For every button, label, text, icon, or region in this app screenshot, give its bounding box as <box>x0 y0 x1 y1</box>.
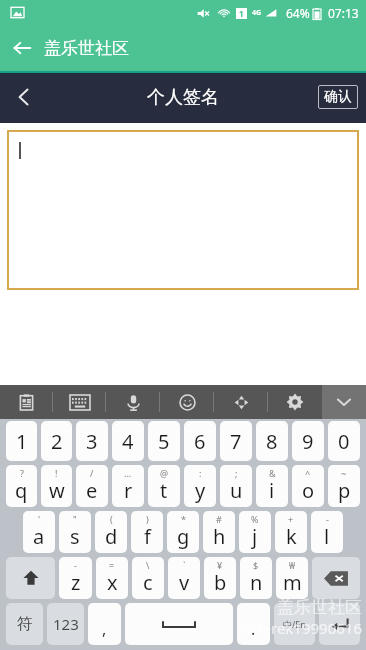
button[interactable]: 4 <box>112 421 144 461</box>
button[interactable]: ~ <box>328 465 360 507</box>
button[interactable]: ¥ <box>204 557 236 599</box>
button[interactable]: / <box>76 465 108 507</box>
button[interactable]: 确认 <box>318 85 358 109</box>
button[interactable]: Voice input <box>106 385 160 419</box>
staticText: 7 <box>230 428 242 455</box>
staticText: ` <box>183 559 186 571</box>
button[interactable]: Symbols <box>6 603 43 645</box>
button[interactable]: - <box>59 557 92 599</box>
button[interactable]: Back <box>0 73 48 121</box>
staticText: z <box>71 569 81 596</box>
button[interactable]: 6 <box>184 421 216 461</box>
staticText: h <box>213 523 226 550</box>
button[interactable]: Language <box>274 603 315 645</box>
button[interactable] <box>125 603 233 645</box>
button[interactable]: ) <box>131 511 163 553</box>
staticText: = <box>109 559 115 571</box>
staticText: , <box>102 618 107 640</box>
button[interactable]: . <box>237 603 270 645</box>
staticText: g <box>177 523 190 550</box>
button[interactable]: ₩ <box>276 557 308 599</box>
button[interactable]: ' <box>23 511 55 553</box>
button[interactable]: Enter <box>319 603 360 645</box>
staticText: c <box>143 569 153 596</box>
staticText: 3 <box>86 428 98 455</box>
button[interactable]: 7 <box>220 421 252 461</box>
staticText: - <box>326 513 329 525</box>
staticText: ^ <box>305 467 311 479</box>
button[interactable]: ^ <box>292 465 324 507</box>
staticText: j <box>252 523 258 550</box>
button[interactable]: ` <box>168 557 200 599</box>
button[interactable]: 1 <box>6 421 37 461</box>
button[interactable]: Emoji <box>160 385 214 419</box>
staticText: - <box>74 559 77 571</box>
button[interactable]: ! <box>41 465 72 507</box>
button[interactable]: - <box>311 511 343 553</box>
staticText: 07:13 <box>328 5 359 21</box>
button[interactable]: = <box>96 557 128 599</box>
staticText: / <box>90 467 94 479</box>
staticText: 盖乐世社区 <box>277 597 362 618</box>
button[interactable]: \ <box>132 557 164 599</box>
button[interactable]: Numbers <box>47 603 84 645</box>
button[interactable]: % <box>239 511 271 553</box>
button[interactable]: & <box>256 465 288 507</box>
staticText: 确认 <box>324 88 352 106</box>
button[interactable]: Back <box>0 26 44 70</box>
button[interactable]: 0 <box>328 421 360 461</box>
button[interactable]: 9 <box>292 421 324 461</box>
button[interactable] <box>7 130 359 290</box>
button[interactable]: , <box>88 603 121 645</box>
staticText: x <box>107 569 118 596</box>
button[interactable]: * <box>167 511 199 553</box>
staticText: ) <box>146 513 149 525</box>
button[interactable]: + <box>275 511 307 553</box>
staticText: @derek19990616 <box>239 618 362 638</box>
staticText: % <box>251 513 259 525</box>
staticText: ₩ <box>289 559 296 571</box>
button[interactable]: 3 <box>76 421 108 461</box>
button[interactable]: " <box>59 511 91 553</box>
staticText: l <box>324 523 330 550</box>
staticText: q <box>15 477 28 504</box>
staticText: 4 <box>122 428 134 455</box>
button[interactable]: Shift <box>6 557 55 599</box>
button[interactable]: @ <box>148 465 180 507</box>
button[interactable]: : <box>184 465 216 507</box>
staticText: f <box>144 523 151 550</box>
button[interactable]: Backspace <box>312 557 360 599</box>
button[interactable]: ? <box>6 465 37 507</box>
button[interactable]: $ <box>240 557 272 599</box>
staticText: $ <box>253 559 259 571</box>
button[interactable]: Keyboard layout <box>53 385 106 419</box>
button[interactable]: Hide keyboard <box>322 385 366 419</box>
staticText: t <box>160 477 168 504</box>
staticText: 符 <box>17 614 33 634</box>
staticText: + <box>288 513 294 525</box>
button[interactable]: Clipboard <box>0 385 53 419</box>
staticText: . <box>251 618 256 640</box>
staticText: a <box>33 523 45 550</box>
staticText: 0 <box>338 428 350 455</box>
staticText: y <box>195 477 206 504</box>
staticText: d <box>105 523 118 550</box>
button[interactable]: 5 <box>148 421 180 461</box>
button[interactable]: 8 <box>256 421 288 461</box>
staticText: ¥ <box>217 559 223 571</box>
button[interactable]: Move cursor <box>214 385 268 419</box>
staticText: * <box>181 513 186 525</box>
button[interactable]: ... <box>112 465 144 507</box>
staticText: 中/En <box>283 618 306 630</box>
button[interactable]: ; <box>220 465 252 507</box>
staticText: o <box>302 477 315 504</box>
staticText: 123 <box>53 614 79 634</box>
staticText: n <box>250 569 263 596</box>
staticText: k <box>286 523 297 550</box>
button[interactable]: 2 <box>41 421 72 461</box>
button[interactable]: # <box>203 511 235 553</box>
staticText: ? <box>20 467 24 479</box>
staticText: 5 <box>158 428 170 455</box>
button[interactable]: ( <box>95 511 127 553</box>
button[interactable]: Settings <box>268 385 322 419</box>
